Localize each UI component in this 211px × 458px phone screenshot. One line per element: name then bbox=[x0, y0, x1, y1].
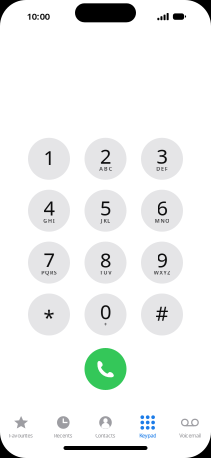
staticText: * bbox=[43, 304, 54, 330]
staticText: # bbox=[155, 300, 168, 326]
button[interactable]: 1 bbox=[28, 138, 70, 180]
staticText: 8 bbox=[100, 246, 111, 273]
button[interactable]: Recents bbox=[42, 413, 84, 443]
button[interactable]: 6 bbox=[141, 190, 183, 232]
staticText: 9 bbox=[156, 246, 167, 273]
staticText: Keypad bbox=[139, 432, 156, 439]
button[interactable]: Keypad bbox=[127, 413, 169, 443]
staticText: Contacts bbox=[95, 432, 116, 439]
staticText: PQRS bbox=[41, 269, 57, 276]
button[interactable]: Call bbox=[84, 348, 126, 390]
staticText: Favourites bbox=[9, 432, 33, 439]
staticText: 1 bbox=[43, 144, 54, 171]
staticText: ABC bbox=[99, 165, 112, 172]
button[interactable]: 9 bbox=[141, 242, 183, 284]
staticText: 10:00 bbox=[27, 10, 50, 22]
button[interactable]: 0 bbox=[84, 293, 126, 335]
staticText: TUV bbox=[100, 269, 111, 276]
staticText: 3 bbox=[156, 143, 167, 169]
staticText: 2 bbox=[100, 143, 111, 169]
button[interactable]: 5 bbox=[84, 190, 126, 232]
staticText: DEF bbox=[156, 165, 168, 172]
staticText: 5 bbox=[100, 194, 111, 221]
button[interactable]: 3 bbox=[141, 138, 183, 180]
staticText: MNO bbox=[155, 217, 169, 224]
staticText: JKL bbox=[101, 217, 110, 224]
staticText: Recents bbox=[54, 432, 73, 439]
button[interactable]: 2 bbox=[84, 138, 126, 180]
button[interactable]: Favourites bbox=[0, 413, 42, 443]
button[interactable]: 7 bbox=[28, 242, 70, 284]
staticText: 7 bbox=[43, 246, 54, 273]
button[interactable]: * bbox=[28, 293, 70, 335]
staticText: 0 bbox=[100, 298, 111, 325]
button[interactable]: # bbox=[141, 293, 183, 335]
staticText: 4 bbox=[43, 194, 54, 221]
staticText: 6 bbox=[156, 194, 167, 221]
button[interactable]: 8 bbox=[84, 242, 126, 284]
staticText: WXYZ bbox=[154, 269, 170, 276]
button[interactable]: Contacts bbox=[84, 413, 126, 443]
staticText: Voicemail bbox=[179, 432, 201, 439]
staticText: GHI bbox=[43, 217, 55, 224]
staticText: + bbox=[104, 321, 107, 328]
button[interactable]: Voicemail bbox=[169, 413, 211, 443]
button[interactable]: 4 bbox=[28, 190, 70, 232]
